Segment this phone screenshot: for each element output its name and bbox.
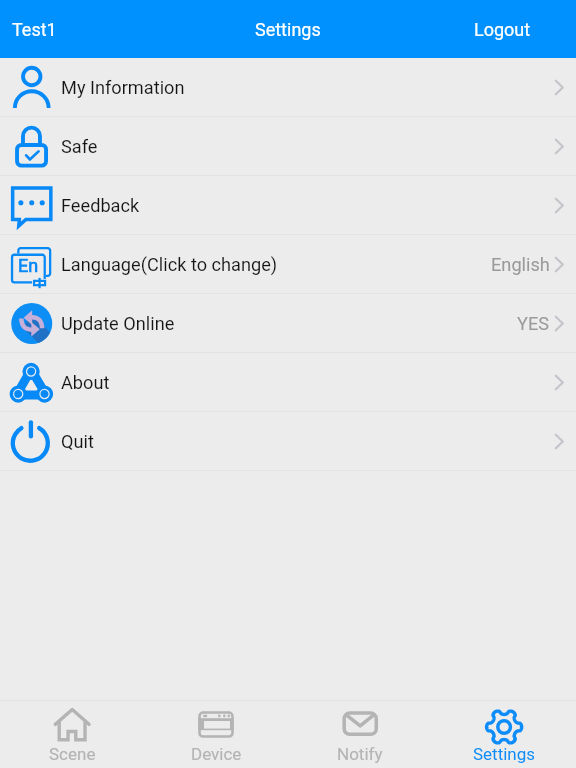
button[interactable]: Logout xyxy=(464,13,576,46)
staticText: Safe xyxy=(61,136,98,157)
staticText: About xyxy=(61,372,110,393)
staticText: Update Online xyxy=(61,313,175,334)
other: Update Online xyxy=(9,301,53,345)
staticText: Notify xyxy=(337,744,383,764)
button[interactable]: Settings xyxy=(432,701,576,768)
button[interactable]: Quit xyxy=(0,412,576,470)
button[interactable]: Feedback xyxy=(0,176,576,234)
staticText: My Information xyxy=(61,77,185,98)
button[interactable]: Safe xyxy=(0,117,576,175)
staticText: Language(Click to change) xyxy=(61,254,278,275)
button[interactable]: Language xyxy=(0,235,576,293)
button[interactable]: Test1 xyxy=(0,13,67,46)
other: Safe xyxy=(9,124,53,168)
staticText: Settings xyxy=(473,744,536,764)
staticText: Scene xyxy=(49,744,96,764)
other: Feedback xyxy=(9,183,53,227)
button[interactable]: Device xyxy=(144,701,288,768)
staticText: En xyxy=(18,255,39,276)
staticText: English xyxy=(491,254,550,275)
button[interactable]: Notify xyxy=(288,701,432,768)
other: Quit xyxy=(9,419,53,463)
other: My Information xyxy=(9,65,53,109)
other: Language xyxy=(9,242,53,286)
button[interactable]: About xyxy=(0,353,576,411)
button[interactable]: My Information xyxy=(0,58,576,116)
staticText: Settings xyxy=(255,19,321,40)
staticText: Feedback xyxy=(61,195,140,216)
staticText: YES xyxy=(517,313,550,334)
staticText: Quit xyxy=(61,431,94,452)
button[interactable]: Update Online xyxy=(0,294,576,352)
other: About xyxy=(9,360,53,404)
staticText: Device xyxy=(191,744,242,764)
button[interactable]: Scene xyxy=(0,701,144,768)
